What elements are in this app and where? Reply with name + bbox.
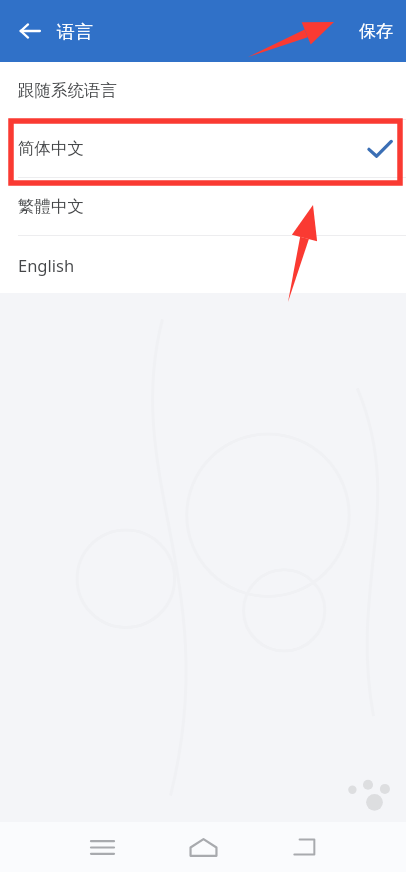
- staticText: English: [18, 254, 75, 276]
- staticText: 语言: [57, 21, 93, 44]
- staticText: 保存: [359, 21, 393, 42]
- button[interactable]: 繁體中文: [0, 178, 406, 235]
- button[interactable]: 保存: [346, 0, 406, 62]
- button[interactable]: 简体中文: [0, 120, 406, 177]
- button[interactable]: Back: [8, 9, 52, 53]
- button[interactable]: 跟随系统语言: [0, 62, 406, 119]
- staticText: 跟随系统语言: [18, 80, 117, 101]
- button[interactable]: English: [0, 236, 406, 293]
- button[interactable]: Back: [264, 822, 344, 872]
- button[interactable]: Recents: [62, 822, 142, 872]
- staticText: 简体中文: [18, 138, 84, 159]
- button[interactable]: Home: [163, 822, 243, 872]
- staticText: 繁體中文: [18, 196, 84, 217]
